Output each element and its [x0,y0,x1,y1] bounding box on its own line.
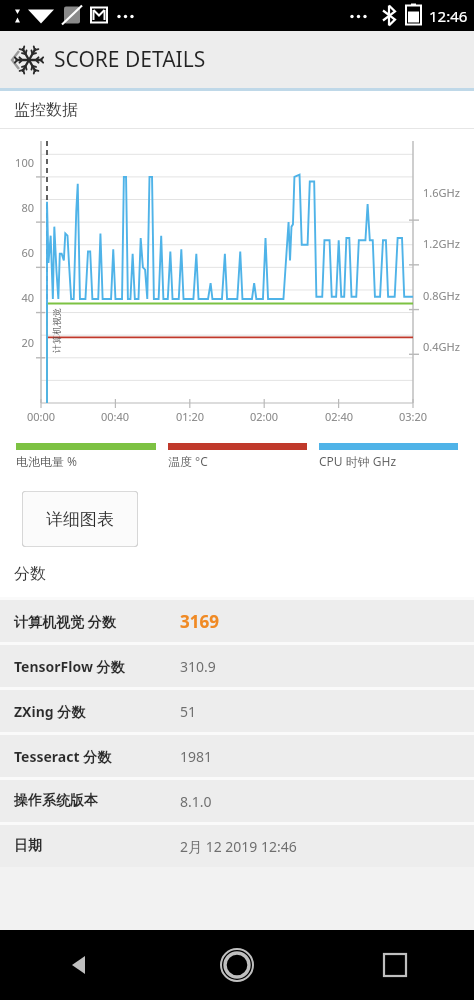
button[interactable]: Recent apps [316,930,474,1000]
staticText: ZXing 分数 [14,702,180,721]
staticText: 2月 12 2019 12:46 [180,837,297,856]
button[interactable]: Back [0,930,158,1000]
staticText: 温度 °C [168,453,208,469]
staticText: 详细图表 [46,509,114,530]
staticText: 02:00 [246,409,282,424]
staticText: 80 [8,200,34,215]
staticText: 100 [8,155,34,170]
staticText: 分数 [14,564,46,584]
staticText: 1.6GHz [423,185,460,200]
staticText: 02:40 [321,409,357,424]
staticText: 操作系统版本 [14,792,180,810]
button[interactable]: Back [4,36,52,84]
staticText: 计算机视觉 分数 [14,612,180,631]
staticText: CPU 时钟 GHz [319,453,397,469]
button[interactable]: 操作系统版本 [0,780,474,822]
button[interactable]: Home [158,930,316,1000]
staticText: 40 [8,290,34,305]
staticText: 1981 [180,747,213,766]
button[interactable]: ZXing 分数 [0,690,474,732]
staticText: 3169 [180,610,219,633]
staticText: 51 [180,702,197,721]
button[interactable]: 详细图表 [22,491,138,547]
button[interactable]: 计算机视觉 分数 [0,600,474,642]
staticText: 监控数据 [14,100,78,120]
staticText: 00:00 [23,409,59,424]
staticText: 00:40 [97,409,133,424]
staticText: 0.8GHz [423,288,460,303]
staticText: 日期 [14,837,180,855]
staticText: 0.4GHz [423,339,460,354]
button[interactable]: Tesseract 分数 [0,735,474,777]
staticText: Tesseract 分数 [14,747,180,766]
staticText: 20 [8,335,34,350]
staticText: 310.9 [180,657,216,676]
staticText: 12:46 [429,6,468,26]
button[interactable]: 日期 [0,825,474,867]
staticText: 60 [8,245,34,260]
button[interactable]: TensorFlow 分数 [0,645,474,687]
staticText: 计算机视觉 [51,308,62,353]
staticText: 1.2GHz [423,236,460,251]
staticText: 8.1.0 [180,792,212,811]
staticText: TensorFlow 分数 [14,657,180,676]
staticText: SCORE DETAILS [54,45,206,74]
staticText: 电池电量 % [16,453,78,469]
staticText: 01:20 [172,409,208,424]
staticText: 03:20 [395,409,431,424]
